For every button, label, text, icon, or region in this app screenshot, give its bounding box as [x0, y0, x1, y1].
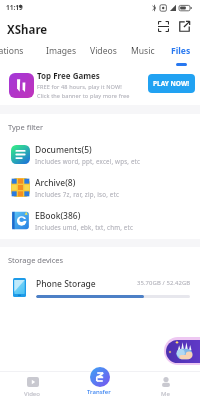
staticText: Includes umd, ebk, txt, chm, etc: [35, 223, 134, 231]
staticText: Me: [161, 390, 170, 398]
staticText: 11:19: [6, 3, 23, 12]
staticText: 35.70GB / 52.42GB: [137, 279, 191, 287]
button[interactable]: Files: [163, 40, 199, 68]
staticText: Videos: [90, 45, 117, 57]
button[interactable]: Videos: [83, 40, 123, 68]
staticText: Documents(5): [35, 144, 92, 156]
button[interactable]: Video: [11, 370, 55, 400]
button[interactable]: Me: [144, 370, 188, 400]
button[interactable]: Share: [176, 18, 193, 35]
staticText: Transfer: [87, 388, 111, 396]
staticText: Video: [24, 390, 40, 398]
staticText: Images: [46, 45, 77, 57]
button[interactable]: Archive(8): [0, 175, 200, 200]
staticText: Includes 7z, rar, zip, iso, etc: [35, 190, 120, 198]
button[interactable]: Send files: [164, 337, 200, 365]
staticText: Applications: [0, 45, 24, 57]
staticText: FREE for 48 hours, play it NOW!: [37, 83, 122, 91]
button[interactable]: PLAY NOW!: [148, 74, 195, 93]
button[interactable]: Music: [124, 40, 162, 68]
staticText: Music: [131, 45, 155, 57]
button[interactable]: Transfer: [78, 366, 122, 400]
button[interactable]: EBook(386): [0, 208, 200, 233]
staticText: XShare: [7, 22, 48, 38]
button[interactable]: Scan code: [155, 18, 172, 35]
button[interactable]: Documents(5): [0, 142, 200, 167]
staticText: PLAY NOW!: [153, 79, 190, 88]
staticText: Top Free Games: [37, 70, 100, 81]
staticText: Files: [171, 45, 191, 57]
button[interactable]: Phone Storage: [0, 269, 200, 303]
button[interactable]: Top Free Games: [0, 0, 200, 106]
button[interactable]: Applications: [0, 40, 31, 68]
staticText: Storage devices: [8, 255, 64, 265]
staticText: Click the banner to play more free: [37, 92, 130, 100]
staticText: Includes word, ppt, excel, wps, etc: [35, 157, 141, 165]
staticText: Archive(8): [35, 177, 76, 189]
staticText: Phone Storage: [36, 278, 96, 290]
button[interactable]: Images: [41, 40, 81, 68]
staticText: EBook(386): [35, 210, 81, 222]
staticText: Type filter: [8, 122, 44, 132]
